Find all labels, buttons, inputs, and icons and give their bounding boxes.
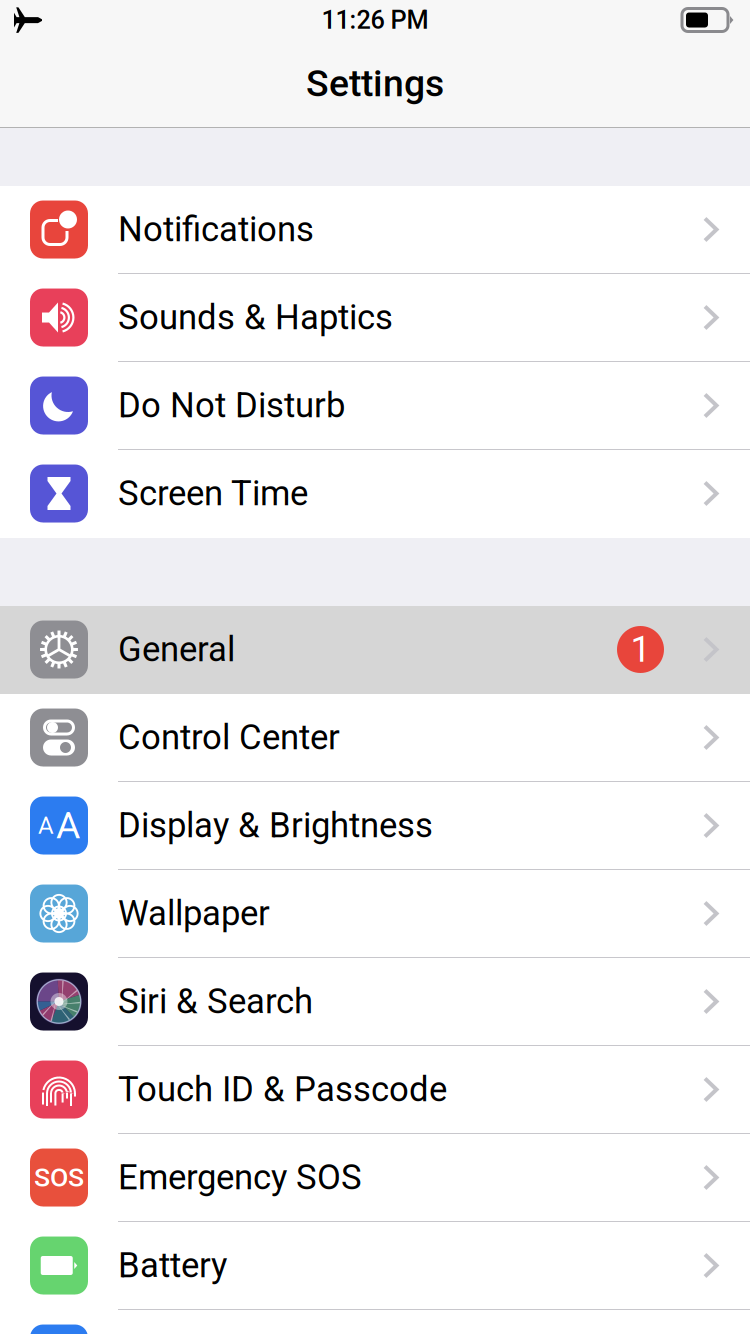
button[interactable]: SOS	[0, 1134, 750, 1222]
button[interactable]: General	[0, 606, 750, 694]
staticText: 1	[630, 628, 650, 671]
button[interactable]: Siri & Search	[0, 958, 750, 1046]
staticText: Settings	[306, 62, 444, 105]
button[interactable]: Control Center	[0, 694, 750, 782]
button[interactable]: Privacy	[0, 1310, 750, 1334]
button[interactable]: Do Not Disturb	[0, 362, 750, 450]
staticText: SOS	[34, 1162, 84, 1193]
button[interactable]: Sounds & Haptics	[0, 274, 750, 362]
staticText: A	[56, 804, 80, 847]
staticText: Siri & Search	[118, 981, 313, 1022]
button[interactable]: Battery	[0, 1222, 750, 1310]
staticText: Sounds & Haptics	[118, 297, 393, 338]
staticText: Wallpaper	[118, 893, 270, 934]
staticText: General	[118, 629, 235, 670]
staticText: Touch ID & Passcode	[118, 1069, 447, 1110]
staticText: Do Not Disturb	[118, 385, 345, 426]
staticText: 11:26 PM	[321, 5, 428, 35]
button[interactable]: Wallpaper	[0, 870, 750, 958]
button[interactable]: Screen Time	[0, 450, 750, 538]
button[interactable]: Notifications	[0, 186, 750, 274]
button[interactable]: Touch ID & Passcode	[0, 1046, 750, 1134]
button[interactable]: A	[0, 782, 750, 870]
staticText: Control Center	[118, 717, 340, 758]
staticText: A	[38, 811, 54, 839]
staticText: Notifications	[118, 209, 314, 250]
staticText: Emergency SOS	[118, 1157, 362, 1198]
staticText: Battery	[118, 1245, 227, 1286]
staticText: Display & Brightness	[118, 805, 433, 846]
staticText: Screen Time	[118, 473, 308, 514]
